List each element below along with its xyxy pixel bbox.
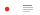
button[interactable]: Open [0, 0, 40, 15]
